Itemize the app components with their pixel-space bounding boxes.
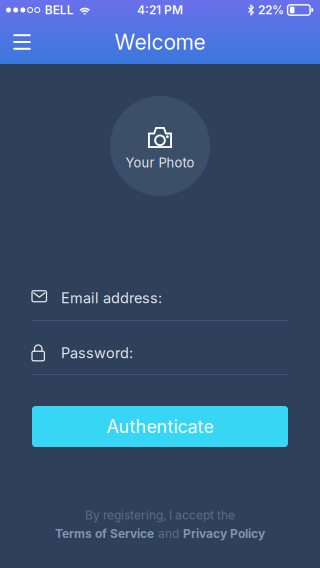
- staticText: Email address:: [61, 289, 162, 307]
- button[interactable]: Authenticate: [32, 406, 288, 447]
- button[interactable]: Menu: [0, 20, 44, 64]
- staticText: BELL: [45, 3, 74, 17]
- button[interactable]: Privacy Policy: [183, 526, 265, 541]
- staticText: Terms of Service: [55, 526, 154, 541]
- staticText: 4:21 PM: [137, 3, 183, 17]
- staticText: and: [158, 526, 179, 541]
- staticText: Welcome: [114, 29, 205, 55]
- staticText: By registering, I accept the: [85, 508, 235, 522]
- button[interactable]: Your Photo: [110, 96, 210, 196]
- button[interactable]: Terms of Service: [55, 526, 154, 541]
- staticText: Authenticate: [106, 416, 213, 437]
- staticText: Your Photo: [125, 155, 194, 171]
- staticText: Password:: [61, 344, 133, 362]
- staticText: Privacy Policy: [183, 526, 265, 541]
- staticText: 22%: [258, 3, 284, 17]
